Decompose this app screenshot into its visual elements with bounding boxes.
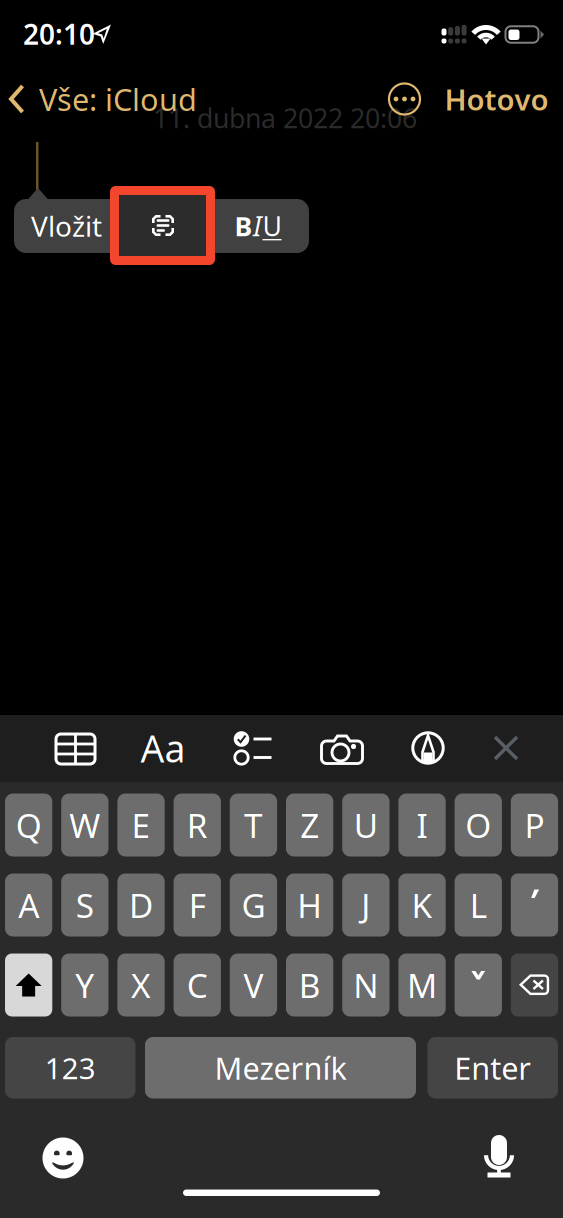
button[interactable]: W: [61, 793, 108, 856]
staticText: Enter: [454, 1047, 531, 1088]
staticText: V: [243, 963, 263, 1007]
button[interactable]: Vložit: [14, 199, 119, 253]
button[interactable]: T: [230, 793, 277, 856]
staticText: K: [411, 883, 432, 927]
staticText: X: [131, 963, 151, 1007]
staticText: M: [407, 963, 437, 1007]
staticText: 11. dubna 2022 20:06: [153, 100, 417, 136]
staticText: D: [129, 883, 153, 927]
staticText: O: [465, 803, 491, 847]
button[interactable]: P: [511, 793, 558, 856]
button[interactable]: C: [174, 953, 221, 1016]
staticText: B: [299, 963, 321, 1007]
button[interactable]: U: [342, 793, 389, 856]
button[interactable]: I: [398, 793, 446, 856]
button[interactable]: Enter: [427, 1037, 558, 1098]
staticText: J: [361, 883, 370, 927]
button[interactable]: S: [61, 873, 108, 936]
button[interactable]: Q: [5, 793, 52, 856]
button[interactable]: V: [230, 953, 277, 1016]
staticText: U: [262, 208, 281, 244]
button[interactable]: O: [455, 793, 502, 856]
button[interactable]: G: [230, 873, 277, 936]
staticText: L: [470, 883, 487, 927]
staticText: Aa: [140, 723, 185, 773]
staticText: C: [187, 963, 208, 1007]
button[interactable]: E: [117, 793, 165, 856]
button[interactable]: Vše: iCloud: [0, 73, 205, 125]
staticText: A: [18, 883, 39, 927]
button[interactable]: D: [117, 873, 165, 936]
staticText: Hotovo: [444, 79, 548, 118]
button[interactable]: Close: [475, 720, 537, 776]
button[interactable]: Checklist: [222, 720, 284, 776]
staticText: W: [69, 803, 100, 847]
button[interactable]: Delete: [511, 953, 558, 1016]
button[interactable]: X: [117, 953, 165, 1016]
button[interactable]: Dictate: [471, 1129, 527, 1185]
staticText: Vložit: [31, 207, 102, 245]
staticText: N: [353, 963, 378, 1007]
staticText: F: [189, 883, 206, 927]
staticText: H: [297, 883, 322, 927]
staticText: U: [354, 803, 378, 847]
staticText: G: [241, 883, 265, 927]
staticText: Q: [16, 803, 42, 847]
button[interactable]: J: [342, 873, 389, 936]
staticText: I: [253, 208, 262, 244]
button[interactable]: Scan text: [119, 195, 207, 256]
staticText: S: [76, 883, 94, 927]
button[interactable]: Format: [132, 720, 194, 776]
button[interactable]: Acute accent: [511, 873, 558, 936]
button[interactable]: Caron accent: [455, 953, 502, 1016]
button[interactable]: N: [342, 953, 389, 1016]
button[interactable]: Markup: [397, 720, 459, 776]
button[interactable]: Table: [44, 721, 106, 777]
button[interactable]: Y: [61, 953, 108, 1016]
staticText: R: [187, 803, 208, 847]
staticText: Y: [75, 963, 94, 1007]
staticText: T: [244, 803, 263, 847]
staticText: 123: [45, 1048, 96, 1087]
button[interactable]: More: [381, 76, 427, 122]
staticText: Vše: iCloud: [39, 79, 197, 119]
staticText: Mezerník: [214, 1047, 346, 1088]
button[interactable]: Mezerník: [145, 1037, 416, 1098]
button[interactable]: L: [455, 873, 502, 936]
button[interactable]: M: [398, 953, 446, 1016]
button[interactable]: F: [174, 873, 221, 936]
button[interactable]: A: [5, 873, 52, 936]
button[interactable]: R: [174, 793, 221, 856]
staticText: I: [416, 803, 427, 847]
button[interactable]: K: [398, 873, 446, 936]
button[interactable]: Bold Italic Underline: [208, 199, 308, 253]
staticText: E: [131, 803, 150, 847]
staticText: 20:10: [23, 15, 95, 53]
staticText: Z: [300, 803, 319, 847]
button[interactable]: B: [286, 953, 333, 1016]
button[interactable]: 123: [5, 1037, 135, 1098]
button[interactable]: Z: [286, 793, 333, 856]
button[interactable]: Camera: [311, 722, 373, 778]
button[interactable]: H: [286, 873, 333, 936]
button[interactable]: Hotovo: [436, 73, 556, 125]
staticText: B: [234, 208, 252, 244]
button[interactable]: Emoji: [35, 1130, 91, 1186]
button[interactable]: Shift: [5, 953, 52, 1016]
staticText: P: [524, 803, 544, 847]
